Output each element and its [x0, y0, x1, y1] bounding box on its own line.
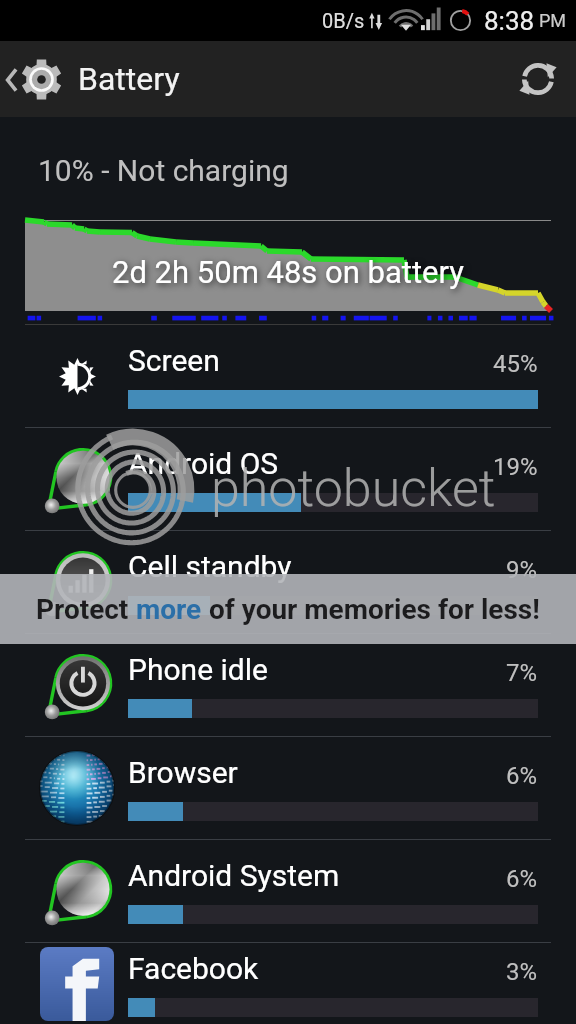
button[interactable]: Facebook — [0, 943, 576, 1024]
button[interactable]: Android OS — [0, 428, 576, 530]
staticText: PM — [539, 10, 567, 31]
button[interactable]: Phone idle — [0, 634, 576, 736]
button[interactable]: Browser — [0, 737, 576, 839]
staticText: Cell standby — [128, 549, 292, 584]
staticText: 10% - Not charging — [38, 153, 289, 188]
button[interactable]: Refresh — [500, 41, 576, 117]
button[interactable]: Android System — [0, 840, 576, 942]
button[interactable]: Navigate up — [0, 59, 66, 100]
staticText: Android OS — [128, 446, 279, 481]
staticText: Battery — [78, 60, 180, 98]
button[interactable]: Screen — [0, 325, 576, 427]
staticText: of your memories for less! — [202, 593, 540, 626]
staticText: 7% — [506, 659, 538, 687]
staticText: 0B/s — [322, 9, 365, 32]
staticText: 45% — [493, 350, 538, 378]
staticText: 6% — [506, 865, 538, 893]
staticText: 2d 2h 50m 48s on battery — [112, 254, 464, 290]
staticText: Screen — [128, 343, 220, 378]
staticText: 3% — [506, 958, 538, 986]
staticText: 8:38 — [484, 6, 535, 36]
staticText: Android System — [128, 858, 340, 893]
staticText: Facebook — [128, 951, 259, 986]
staticText: Browser — [128, 755, 238, 790]
staticText: 6% — [506, 762, 538, 790]
button[interactable]: Cell standby — [0, 531, 576, 633]
staticText: photobucket — [211, 458, 496, 519]
staticText: more — [136, 593, 202, 626]
staticText: 9% — [506, 556, 538, 584]
button[interactable]: 2d 2h 50m 48s on battery — [25, 220, 551, 311]
staticText: 19% — [493, 453, 538, 481]
staticText: Phone idle — [128, 652, 268, 687]
staticText: Protect — [36, 593, 136, 626]
